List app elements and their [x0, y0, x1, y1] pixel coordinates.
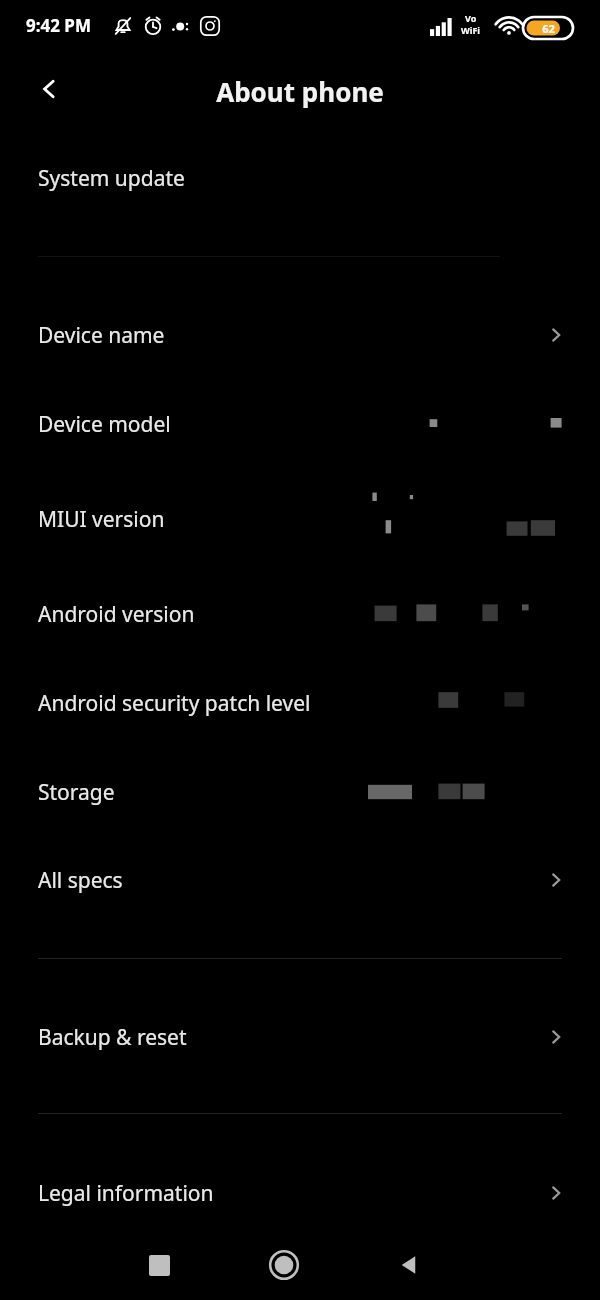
button[interactable]: Back	[378, 1234, 440, 1296]
button[interactable]: Android version	[0, 576, 600, 652]
button[interactable]: Device model	[0, 386, 600, 462]
button[interactable]: Storage	[0, 754, 600, 830]
staticText: Backup & reset	[38, 1023, 187, 1052]
button[interactable]: Recent apps	[128, 1234, 190, 1296]
staticText: Storage	[38, 778, 115, 807]
staticText: Android version	[38, 600, 195, 629]
staticText: 9:42 PM	[26, 14, 91, 37]
button[interactable]: Android security patch level	[0, 665, 600, 741]
button[interactable]: Home	[253, 1234, 315, 1296]
button[interactable]: System update	[0, 140, 600, 216]
staticText: Device name	[38, 321, 165, 350]
staticText: Vo	[465, 12, 477, 24]
staticText: All specs	[38, 866, 123, 895]
staticText: Device model	[38, 410, 171, 439]
staticText: Legal information	[38, 1179, 214, 1208]
button[interactable]: Device name	[0, 297, 600, 373]
staticText: Android security patch level	[38, 689, 311, 718]
button[interactable]: Back	[20, 60, 78, 118]
staticText: 62	[542, 21, 555, 36]
staticText: System update	[38, 164, 185, 193]
button[interactable]: Legal information	[0, 1155, 600, 1231]
button[interactable]: All specs	[0, 842, 600, 918]
staticText: MIUI version	[38, 505, 165, 534]
button[interactable]: Backup & reset	[0, 999, 600, 1075]
button[interactable]: MIUI version	[0, 481, 600, 557]
staticText: About phone	[216, 74, 384, 109]
staticText: WiFi	[461, 24, 481, 36]
